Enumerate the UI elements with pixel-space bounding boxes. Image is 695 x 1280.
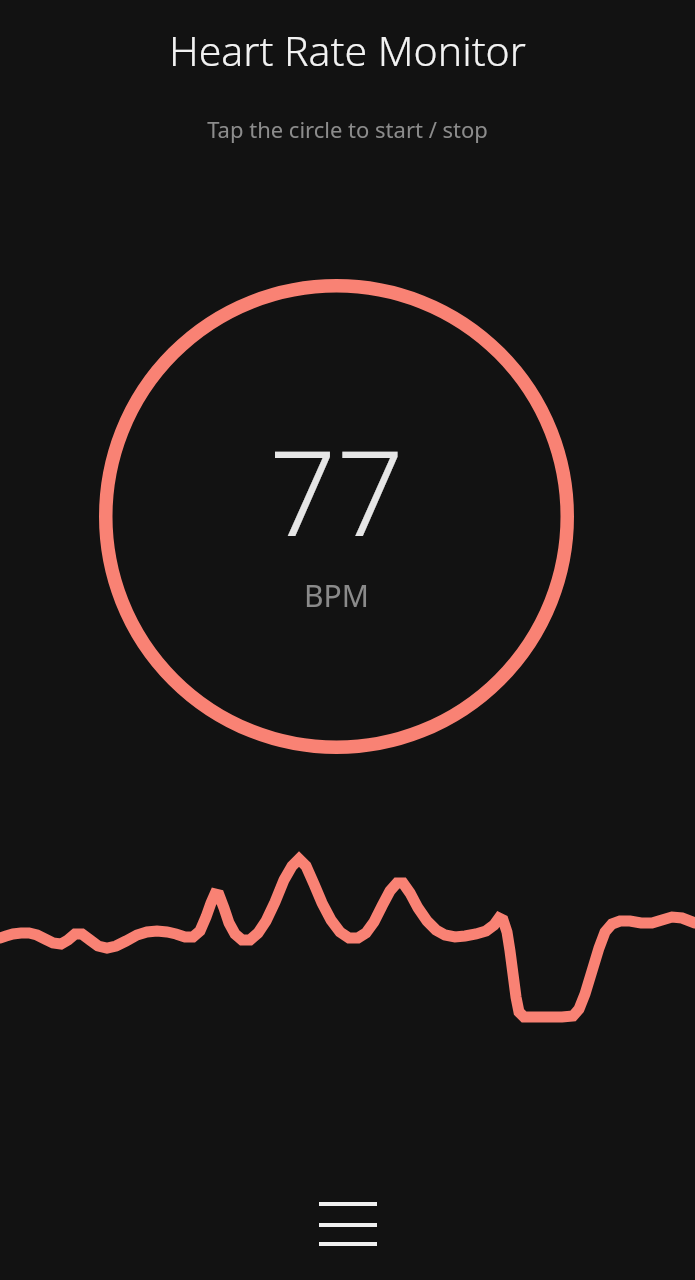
staticText: Tap the circle to start / stop <box>0 114 695 144</box>
button[interactable]: 77 <box>99 279 574 754</box>
staticText: 77 <box>269 410 404 571</box>
staticText: BPM <box>304 575 369 616</box>
button[interactable]: Menu <box>300 1186 396 1262</box>
staticText: Heart Rate Monitor <box>0 22 695 78</box>
